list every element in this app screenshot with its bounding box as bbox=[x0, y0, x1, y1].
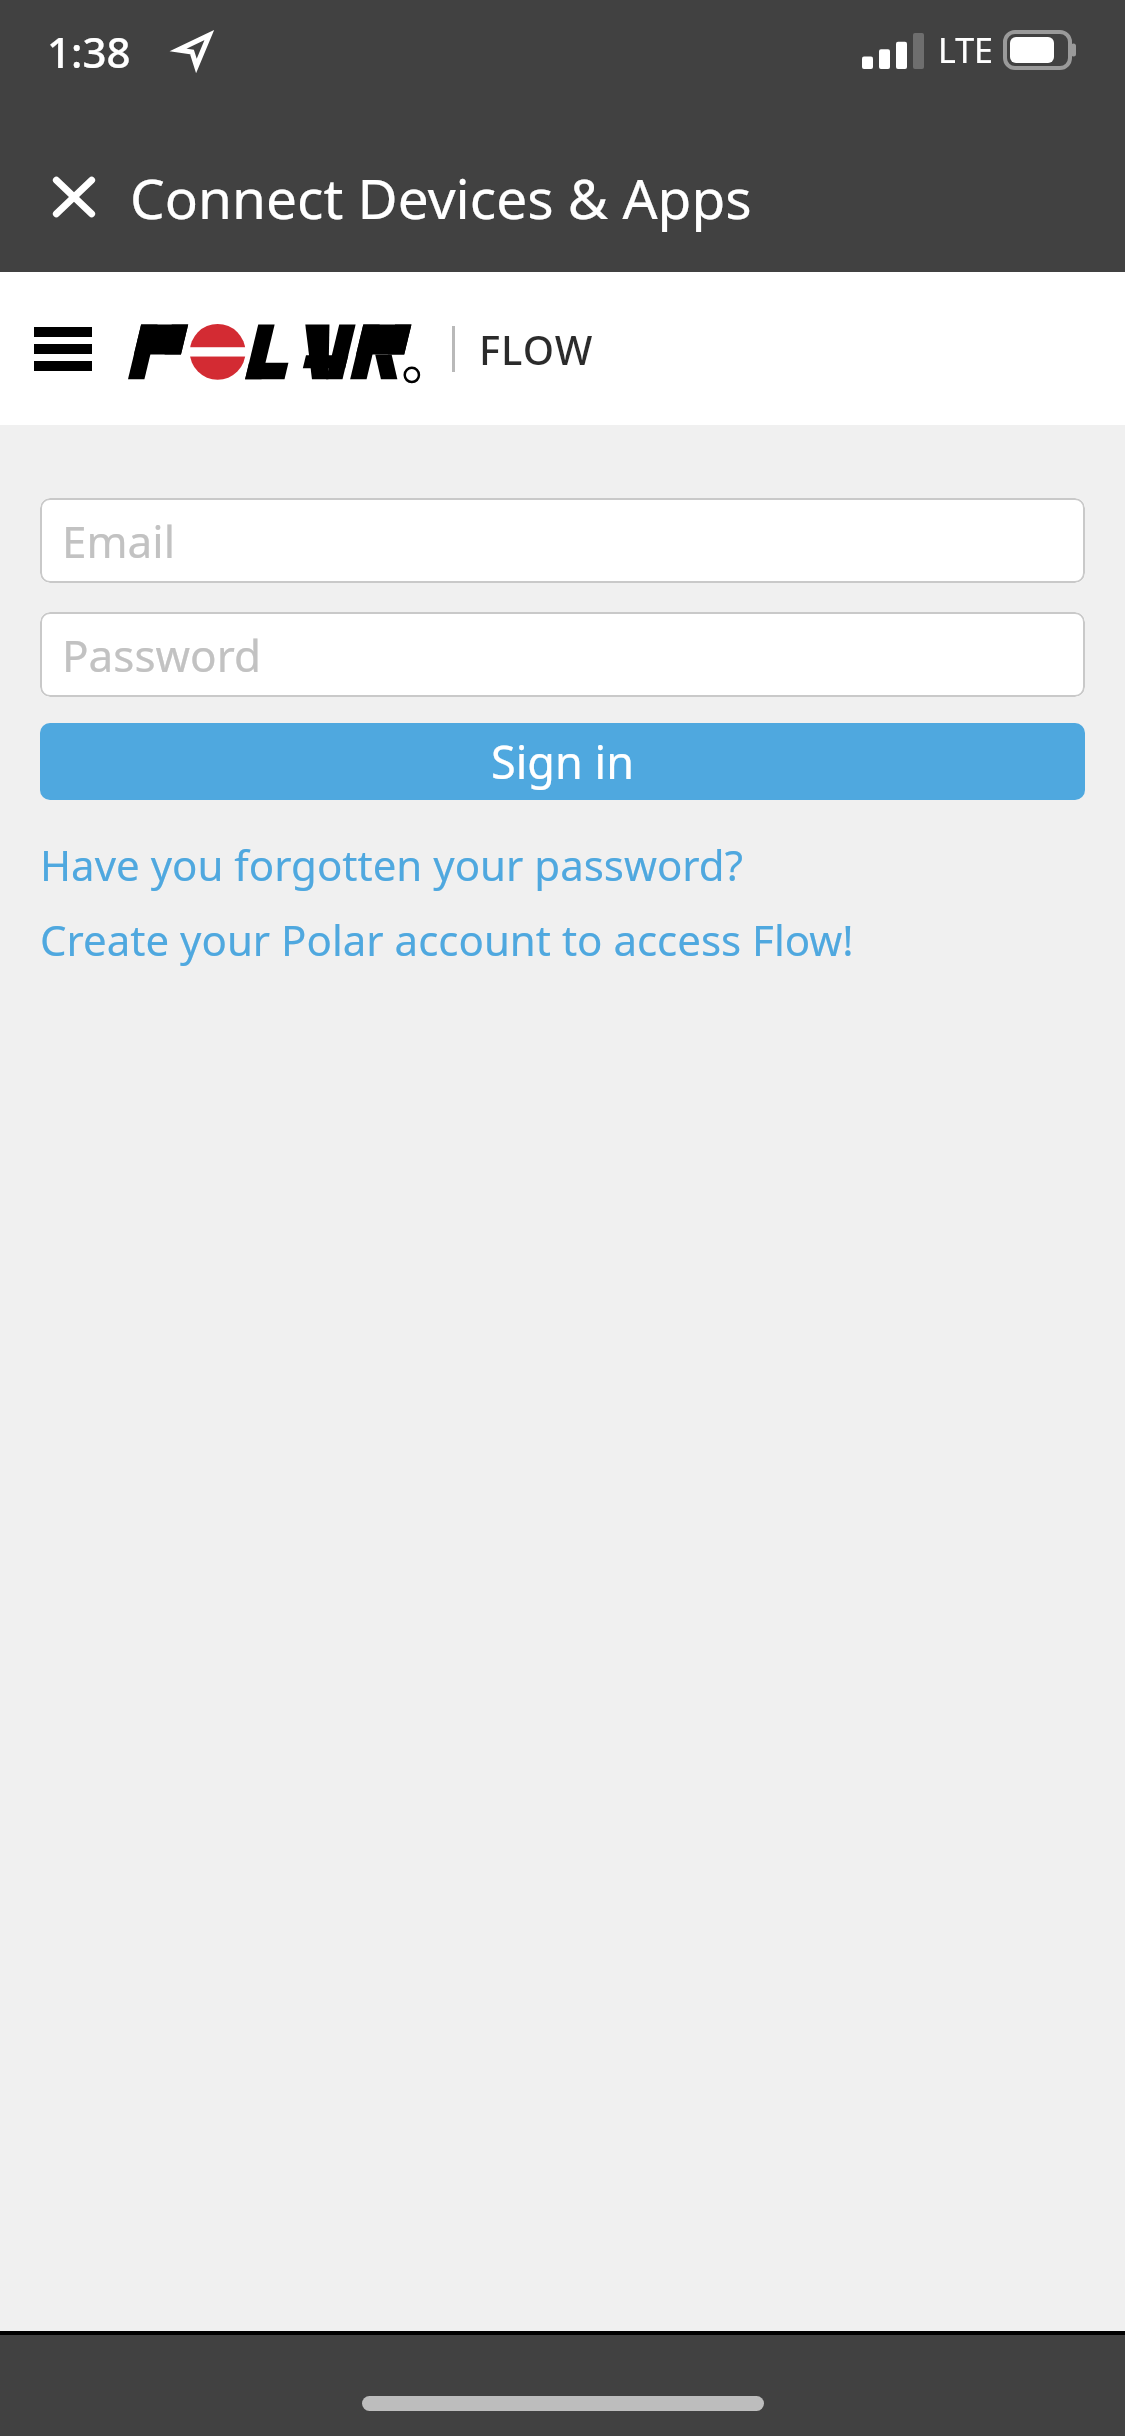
staticText: LTE bbox=[938, 27, 993, 73]
button[interactable]: Password bbox=[40, 612, 1085, 697]
button[interactable]: Sign in bbox=[40, 723, 1085, 800]
button[interactable]: Menu bbox=[20, 306, 106, 392]
staticText: Password bbox=[62, 625, 262, 685]
staticText: Connect Devices & Apps bbox=[130, 160, 752, 235]
staticText: Sign in bbox=[491, 731, 634, 792]
button[interactable]: Create your Polar account to access Flow… bbox=[40, 911, 854, 968]
button[interactable]: Close bbox=[36, 159, 112, 235]
staticText: Have you forgotten your password? bbox=[40, 836, 743, 893]
button[interactable]: Email bbox=[40, 498, 1085, 583]
button[interactable]: Have you forgotten your password? bbox=[40, 836, 743, 893]
staticText: Create your Polar account to access Flow… bbox=[40, 911, 854, 968]
staticText: 1:38 bbox=[47, 23, 131, 80]
staticText: Email bbox=[62, 511, 175, 571]
staticText: FLOW bbox=[479, 322, 594, 376]
button[interactable]: Polar Flow bbox=[128, 313, 428, 385]
